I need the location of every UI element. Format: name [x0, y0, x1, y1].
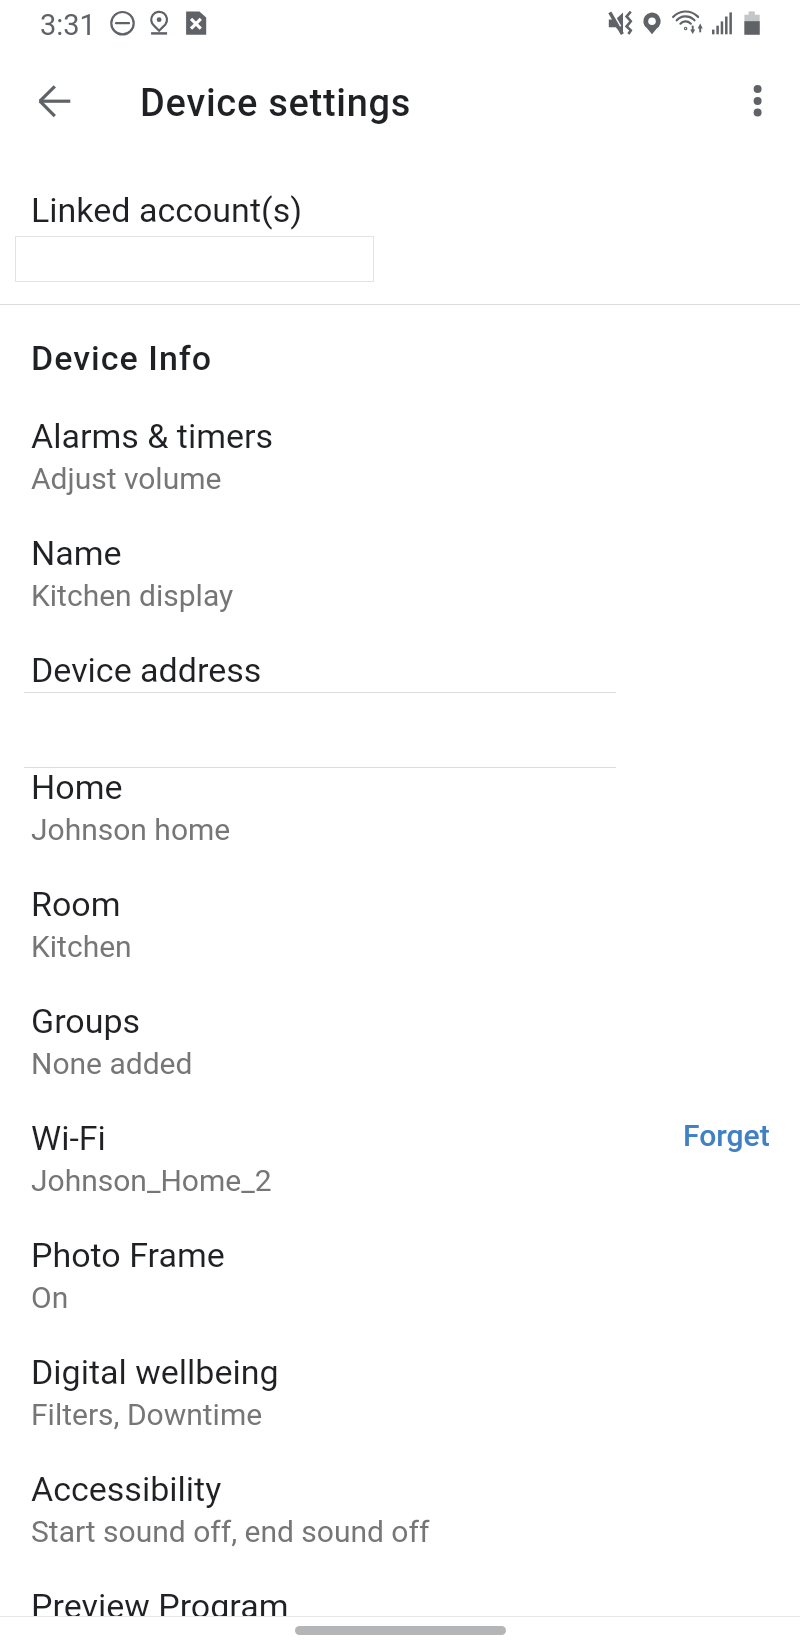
- staticText: Device settings: [140, 81, 412, 126]
- button[interactable]: Preview Program: [0, 1586, 800, 1642]
- staticText: Filters, Downtime: [31, 1397, 263, 1432]
- staticText: Johnson_Home_2: [31, 1163, 272, 1198]
- staticText: Preview Program: [31, 1586, 289, 1626]
- staticText: Home: [31, 767, 123, 807]
- button[interactable]: Name: [0, 533, 800, 633]
- button[interactable]: Digital wellbeing: [0, 1352, 800, 1452]
- button[interactable]: Accessibility: [0, 1469, 800, 1569]
- staticText: Wi-Fi: [31, 1118, 106, 1158]
- button[interactable]: More options: [720, 64, 794, 138]
- staticText: Kitchen display: [31, 578, 234, 613]
- button[interactable]: Linked accounts: [15, 236, 374, 282]
- staticText: Photo Frame: [31, 1235, 225, 1275]
- staticText: Device address: [31, 650, 262, 690]
- button[interactable]: Groups: [0, 1001, 800, 1101]
- staticText: Room: [31, 884, 121, 924]
- staticText: Johnson home: [31, 812, 231, 847]
- staticText: Name: [31, 533, 122, 573]
- button[interactable]: Room: [0, 884, 800, 984]
- staticText: Groups: [31, 1001, 141, 1041]
- button[interactable]: Photo Frame: [0, 1235, 800, 1335]
- staticText: Accessibility: [31, 1469, 222, 1509]
- staticText: Digital wellbeing: [31, 1352, 279, 1392]
- staticText: On: [31, 1280, 69, 1315]
- staticText: Alarms & timers: [31, 416, 274, 456]
- staticText: Kitchen: [31, 929, 132, 964]
- button[interactable]: Wi-Fi: [0, 1118, 800, 1218]
- button[interactable]: Home: [0, 767, 800, 867]
- button[interactable]: Alarms & timers: [0, 416, 800, 516]
- staticText: Device Info: [31, 338, 213, 378]
- staticText: Adjust volume: [31, 461, 222, 496]
- staticText: Forget: [683, 1118, 770, 1153]
- staticText: None added: [31, 1046, 193, 1081]
- staticText: Linked account(s): [31, 190, 303, 230]
- button[interactable]: Device address: [0, 650, 800, 706]
- button[interactable]: Back: [18, 64, 92, 138]
- staticText: Start sound off, end sound off: [31, 1514, 430, 1549]
- staticText: 3:31: [40, 8, 96, 42]
